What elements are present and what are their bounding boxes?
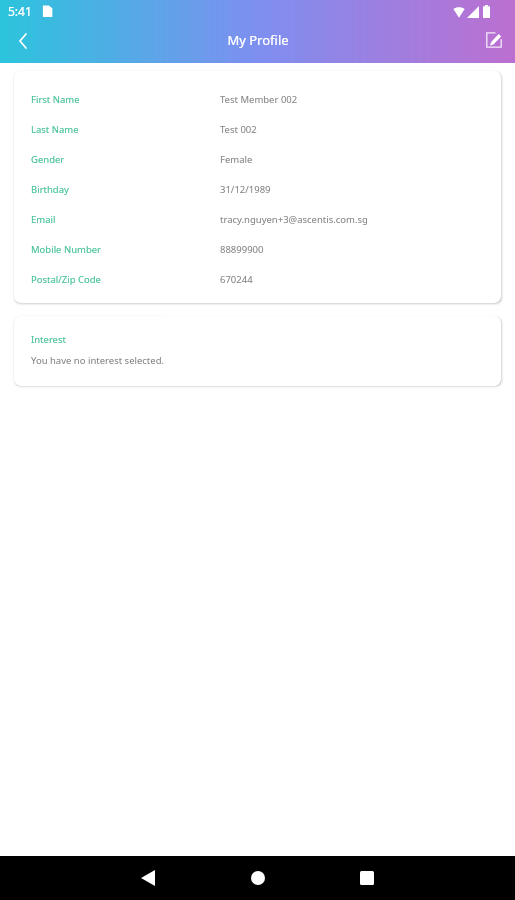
staticText: 31/12/1989: [220, 183, 271, 196]
staticText: 88899900: [220, 243, 264, 256]
staticText: Last Name: [31, 123, 220, 136]
staticText: Birthday: [31, 183, 220, 196]
staticText: Gender: [31, 153, 220, 166]
staticText: Interest: [31, 333, 66, 346]
button[interactable]: Back: [0, 22, 44, 63]
button[interactable]: Edit profile: [475, 22, 515, 63]
staticText: 670244: [220, 273, 253, 286]
staticText: Email: [31, 213, 220, 226]
staticText: Test 002: [220, 123, 257, 136]
staticText: 5:41: [8, 3, 32, 19]
staticText: Female: [220, 153, 253, 166]
button[interactable]: Recent apps: [343, 856, 391, 900]
button[interactable]: Home: [234, 856, 282, 900]
staticText: Mobile Number: [31, 243, 220, 256]
staticText: Test Member 002: [220, 93, 298, 106]
staticText: You have no interest selected.: [31, 354, 165, 367]
staticText: Postal/Zip Code: [31, 273, 220, 286]
staticText: tracy.nguyen+3@ascentis.com.sg: [220, 213, 368, 226]
staticText: First Name: [31, 93, 220, 106]
button[interactable]: Back: [124, 856, 172, 900]
staticText: My Profile: [227, 31, 289, 49]
